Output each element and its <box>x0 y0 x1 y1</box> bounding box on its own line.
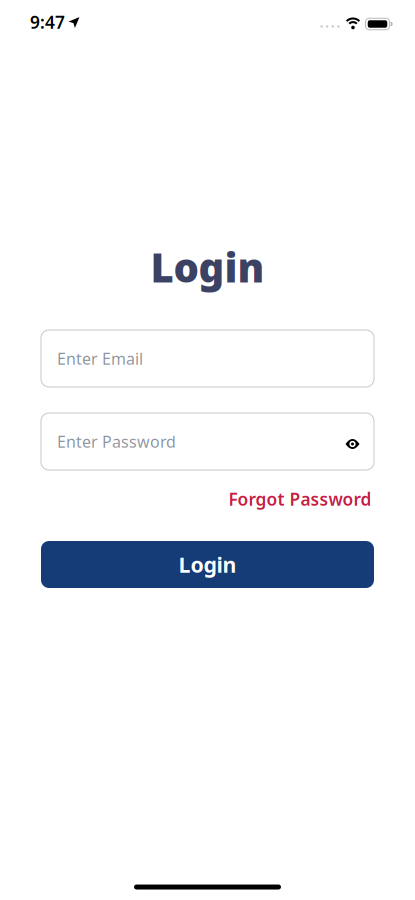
staticText: 9:47 <box>30 10 65 33</box>
button[interactable]: Forgot Password <box>228 487 371 510</box>
staticText: Login <box>150 240 264 293</box>
staticText: Forgot Password <box>228 487 371 510</box>
button[interactable]: Login <box>41 541 374 588</box>
staticText: Enter Email <box>57 348 143 369</box>
button[interactable]: Enter Email <box>41 330 374 387</box>
staticText: Login <box>178 550 236 579</box>
button[interactable]: Enter Password <box>41 413 374 470</box>
staticText: Enter Password <box>57 431 176 452</box>
button[interactable]: Show password <box>345 438 359 450</box>
